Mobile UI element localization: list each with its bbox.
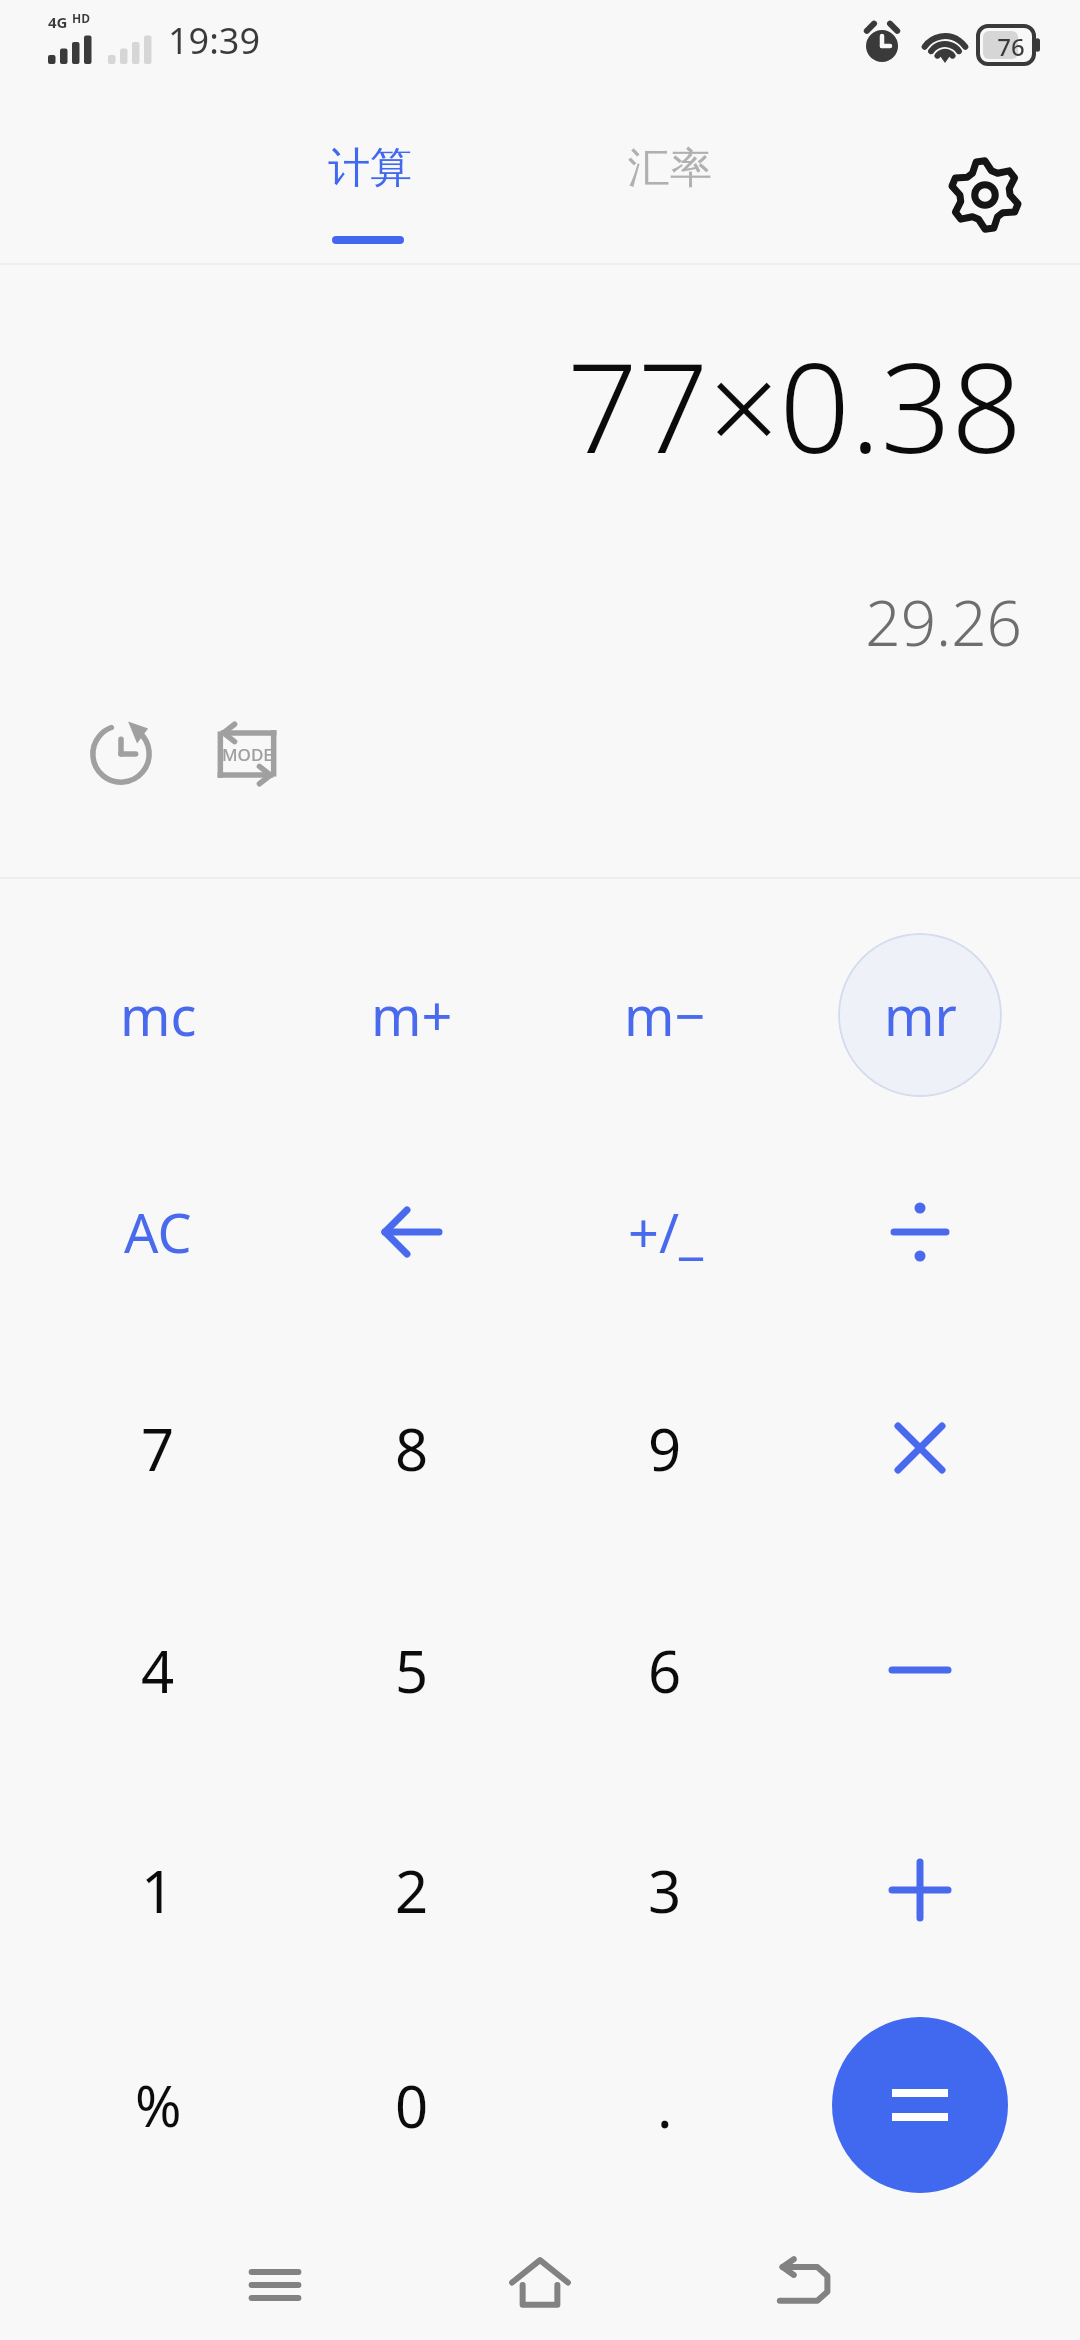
button[interactable]: 5	[324, 1588, 500, 1752]
staticText: 5	[395, 1631, 429, 1710]
button[interactable]: 3	[577, 1808, 753, 1972]
staticText: 7	[141, 1409, 175, 1488]
staticText: HD	[72, 10, 90, 26]
button[interactable]: 2	[324, 1808, 500, 1972]
staticText: 9	[648, 1409, 682, 1488]
staticText: 4G	[48, 12, 68, 32]
button[interactable]: Divide	[832, 1150, 1008, 1314]
button[interactable]: 6	[577, 1588, 753, 1752]
button[interactable]: Backspace	[324, 1150, 500, 1314]
button[interactable]: Settings	[930, 140, 1040, 250]
button[interactable]: 8	[324, 1366, 500, 1530]
button[interactable]: Minus	[832, 1588, 1008, 1752]
button[interactable]: Back	[730, 2230, 880, 2340]
button[interactable]: mc	[70, 933, 246, 1097]
button[interactable]: Recents	[200, 2230, 350, 2340]
staticText: m+	[371, 978, 453, 1052]
staticText: +/_	[628, 1195, 703, 1269]
button[interactable]: m−	[577, 933, 753, 1097]
button[interactable]: Home	[465, 2230, 615, 2340]
button[interactable]: mr	[838, 933, 1002, 1097]
button[interactable]: .	[577, 2023, 753, 2187]
button[interactable]: Plus	[832, 1808, 1008, 1972]
button[interactable]: Mode	[198, 705, 296, 803]
staticText: mr	[884, 978, 957, 1052]
staticText: 计算	[328, 142, 412, 195]
button[interactable]: Equals	[832, 2017, 1008, 2193]
staticText: %	[135, 2067, 182, 2143]
button[interactable]: History	[72, 705, 170, 803]
button[interactable]: 7	[70, 1366, 246, 1530]
button[interactable]: Multiply	[832, 1366, 1008, 1530]
staticText: 0	[395, 2066, 429, 2145]
staticText: 汇率	[628, 142, 712, 195]
button[interactable]: 计算	[230, 120, 510, 265]
staticText: 3	[648, 1851, 682, 1930]
button[interactable]: 9	[577, 1366, 753, 1530]
button[interactable]: %	[70, 2023, 246, 2187]
button[interactable]: 1	[70, 1808, 246, 1972]
button[interactable]: m+	[324, 933, 500, 1097]
staticText: 29.26	[0, 580, 1022, 664]
staticText: mc	[120, 978, 197, 1052]
staticText: 2	[395, 1851, 429, 1930]
button[interactable]: AC	[70, 1150, 246, 1314]
staticText: .	[657, 2066, 673, 2145]
staticText: 4	[141, 1631, 175, 1710]
staticText: 1	[141, 1851, 175, 1930]
button[interactable]: 4	[70, 1588, 246, 1752]
button[interactable]: +/_	[577, 1150, 753, 1314]
staticText: AC	[124, 1195, 192, 1269]
staticText: 19:39	[168, 16, 261, 65]
button[interactable]: 0	[324, 2023, 500, 2187]
staticText: 6	[648, 1631, 682, 1710]
staticText: 76	[986, 30, 1036, 63]
staticText: 8	[395, 1409, 429, 1488]
staticText: m−	[624, 978, 706, 1052]
button[interactable]: 汇率	[530, 120, 810, 265]
staticText: 77×0.38	[0, 320, 1022, 489]
staticText: MODE	[222, 743, 273, 766]
